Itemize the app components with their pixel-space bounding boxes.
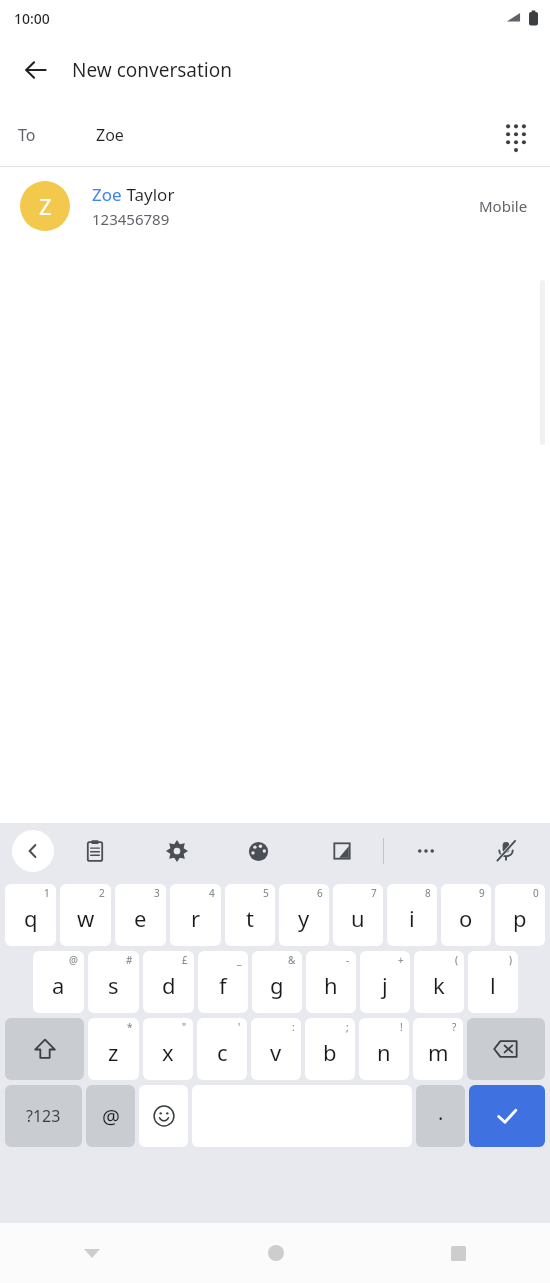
- button[interactable]: More options: [384, 823, 467, 879]
- button[interactable]: Back: [12, 46, 60, 94]
- button[interactable]: _: [198, 951, 248, 1013]
- staticText: j: [382, 970, 388, 1000]
- staticText: 7: [371, 886, 377, 900]
- button[interactable]: 6: [279, 884, 329, 946]
- button[interactable]: !: [359, 1018, 409, 1080]
- button[interactable]: 8: [387, 884, 437, 946]
- button[interactable]: ": [143, 1018, 193, 1080]
- staticText: @: [102, 1103, 120, 1130]
- button[interactable]: £: [143, 951, 194, 1013]
- button[interactable]: Dialpad: [494, 113, 538, 157]
- button[interactable]: Backspace: [467, 1018, 545, 1080]
- staticText: m: [428, 1037, 449, 1067]
- staticText: ;: [346, 1020, 349, 1034]
- button[interactable]: +: [360, 951, 410, 1013]
- staticText: w: [77, 903, 95, 933]
- staticText: 0: [533, 886, 539, 900]
- button[interactable]: Themes: [218, 823, 300, 879]
- staticText: Zoe: [96, 124, 124, 146]
- staticText: ): [509, 953, 512, 967]
- button[interactable]: Send: [469, 1085, 545, 1147]
- staticText: 3: [154, 886, 160, 900]
- button[interactable]: Home: [184, 1223, 367, 1283]
- staticText: 2: [99, 886, 105, 900]
- button[interactable]: Expand toolbar: [12, 830, 54, 872]
- staticText: u: [351, 903, 365, 933]
- staticText: q: [24, 903, 38, 933]
- staticText: Taylor: [122, 183, 175, 206]
- staticText: n: [377, 1037, 391, 1067]
- button[interactable]: :: [251, 1018, 301, 1080]
- staticText: 6: [317, 886, 323, 900]
- staticText: .: [438, 1099, 444, 1126]
- staticText: g: [270, 970, 284, 1000]
- staticText: o: [459, 903, 473, 933]
- staticText: @: [69, 953, 78, 967]
- button[interactable]: ?: [413, 1018, 463, 1080]
- staticText: s: [108, 970, 119, 1000]
- staticText: 1: [44, 886, 50, 900]
- staticText: #: [126, 953, 133, 967]
- button[interactable]: Settings: [136, 823, 218, 879]
- button[interactable]: Voice input off: [467, 823, 544, 879]
- staticText: 5: [263, 886, 269, 900]
- staticText: *: [127, 1020, 133, 1034]
- staticText: +: [398, 953, 404, 967]
- button[interactable]: 9: [441, 884, 491, 946]
- button[interactable]: &: [252, 951, 302, 1013]
- staticText: p: [513, 903, 527, 933]
- button[interactable]: *: [88, 1018, 139, 1080]
- button[interactable]: ?123: [5, 1085, 82, 1147]
- button[interactable]: Back: [0, 1223, 184, 1283]
- staticText: _: [237, 953, 242, 967]
- staticText: l: [490, 970, 496, 1000]
- staticText: £: [182, 953, 188, 967]
- staticText: ?123: [26, 1105, 61, 1127]
- staticText: Zoe: [92, 183, 122, 206]
- staticText: h: [324, 970, 338, 1000]
- button[interactable]: 7: [333, 884, 383, 946]
- staticText: f: [219, 970, 227, 1000]
- staticText: b: [323, 1037, 337, 1067]
- staticText: i: [409, 903, 415, 933]
- button[interactable]: ;: [305, 1018, 355, 1080]
- button[interactable]: 5: [225, 884, 275, 946]
- button[interactable]: 1: [5, 884, 56, 946]
- staticText: New conversation: [72, 57, 232, 83]
- button[interactable]: 0: [495, 884, 545, 946]
- staticText: c: [217, 1037, 228, 1067]
- staticText: (: [455, 953, 458, 967]
- staticText: z: [108, 1037, 119, 1067]
- button[interactable]: 3: [115, 884, 166, 946]
- button[interactable]: #: [88, 951, 139, 1013]
- staticText: d: [162, 970, 176, 1000]
- staticText: k: [433, 970, 445, 1000]
- staticText: &: [288, 953, 296, 967]
- button[interactable]: ): [468, 951, 518, 1013]
- button[interactable]: Handwriting: [300, 823, 383, 879]
- button[interactable]: @: [86, 1085, 135, 1147]
- button[interactable]: Z: [0, 167, 550, 245]
- button[interactable]: Clipboard: [54, 823, 136, 879]
- staticText: ?: [452, 1020, 457, 1034]
- staticText: 4: [209, 886, 215, 900]
- staticText: -: [346, 953, 350, 967]
- button[interactable]: 4: [170, 884, 221, 946]
- staticText: x: [162, 1037, 174, 1067]
- button[interactable]: 2: [60, 884, 111, 946]
- button[interactable]: @: [33, 951, 84, 1013]
- button[interactable]: (: [414, 951, 464, 1013]
- staticText: Z: [39, 191, 52, 221]
- staticText: r: [191, 903, 201, 933]
- staticText: a: [52, 970, 65, 1000]
- button[interactable]: Shift: [5, 1018, 84, 1080]
- staticText: 123456789: [92, 209, 170, 229]
- button[interactable]: .: [416, 1085, 465, 1147]
- button[interactable]: ': [197, 1018, 247, 1080]
- button[interactable]: Recents: [367, 1223, 550, 1283]
- staticText: Mobile: [479, 196, 528, 216]
- button[interactable]: Emoji: [139, 1085, 188, 1147]
- staticText: ': [238, 1020, 241, 1034]
- button[interactable]: -: [306, 951, 356, 1013]
